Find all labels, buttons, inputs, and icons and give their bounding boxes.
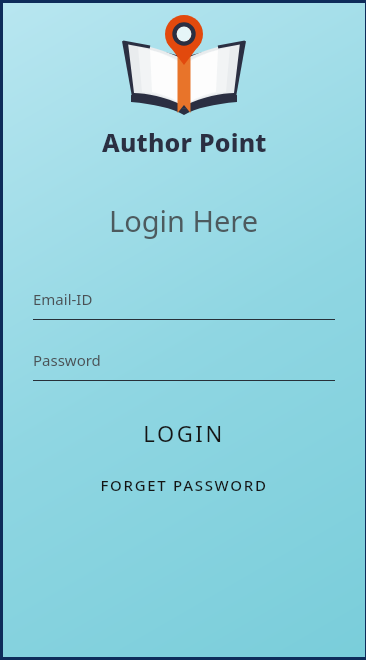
other: Author Point logo <box>120 17 248 117</box>
button[interactable]: FORGET PASSWORD <box>3 469 365 501</box>
staticText: Email-ID <box>33 289 93 309</box>
staticText: Login Here <box>109 201 259 240</box>
staticText: FORGET PASSWORD <box>100 475 268 495</box>
staticText: LOGIN <box>143 418 225 448</box>
staticText: Author Point <box>102 125 267 159</box>
button[interactable]: Password <box>33 350 335 381</box>
button[interactable]: LOGIN <box>3 411 365 455</box>
staticText: Password <box>33 350 101 370</box>
button[interactable]: Email-ID <box>33 289 335 320</box>
